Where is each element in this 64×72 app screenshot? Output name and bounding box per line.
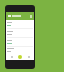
button[interactable]: Navigate up	[6, 12, 34, 20]
button[interactable]	[7, 30, 33, 39]
button[interactable]	[7, 39, 33, 48]
button[interactable]	[7, 21, 33, 30]
button[interactable]	[7, 48, 33, 54]
button[interactable]: Profile	[26, 54, 32, 60]
button[interactable]: Home	[9, 54, 15, 60]
button[interactable]: Navigate up	[7, 14, 11, 18]
button[interactable]: Add	[17, 54, 23, 60]
button[interactable]: More options	[29, 14, 33, 18]
